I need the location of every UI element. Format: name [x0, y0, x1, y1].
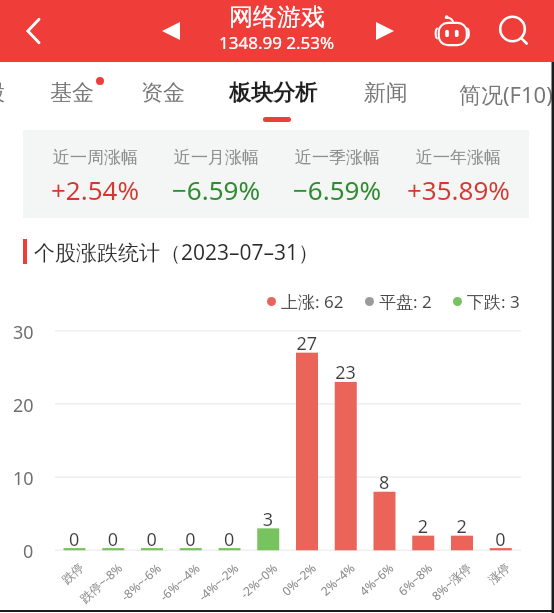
staticText: 新闻 — [364, 79, 408, 107]
button[interactable]: Back — [11, 8, 57, 54]
staticText: 网络游戏 — [229, 2, 325, 32]
staticText: 资金 — [141, 79, 185, 107]
staticText: 个股涨跌统计（2023–07–31） — [34, 238, 320, 267]
staticText: −6.59% — [172, 172, 261, 207]
staticText: 近一年涨幅 — [416, 147, 501, 168]
staticText: 上涨: 62 — [281, 290, 344, 313]
button[interactable]: Search — [489, 8, 535, 54]
button[interactable]: 新闻 — [364, 62, 408, 118]
staticText: 基金 — [50, 79, 94, 107]
button[interactable]: 基金 — [50, 62, 94, 118]
button[interactable]: AI assistant — [429, 8, 475, 54]
staticText: 板块分析 — [229, 79, 317, 107]
staticText: −6.59% — [293, 172, 382, 207]
button[interactable]: 板块分析 — [229, 62, 317, 118]
staticText: +2.54% — [51, 172, 140, 207]
staticText: 近一季涨幅 — [295, 147, 380, 168]
staticText: 股 — [0, 79, 5, 107]
staticText: 下跌: 3 — [467, 290, 520, 313]
button[interactable]: Next sector — [362, 8, 408, 54]
button[interactable]: 简况(F10) — [459, 62, 553, 118]
staticText: 近一月涨幅 — [174, 147, 259, 168]
button[interactable]: Previous sector — [148, 8, 194, 54]
staticText: 1348.99 2.53% — [219, 31, 335, 54]
staticText: 近一周涨幅 — [53, 147, 138, 168]
staticText: 平盘: 2 — [379, 290, 432, 313]
staticText: +35.89% — [407, 172, 510, 207]
button[interactable]: 股 — [0, 62, 5, 118]
staticText: 简况(F10) — [459, 79, 553, 109]
button[interactable]: 资金 — [141, 62, 185, 118]
